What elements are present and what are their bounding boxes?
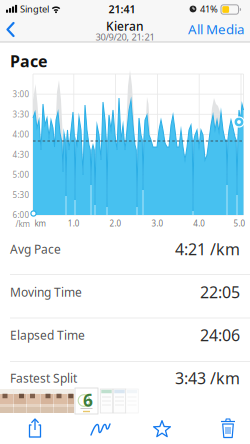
staticText: km	[34, 218, 45, 229]
staticText: /km	[15, 219, 29, 229]
staticText: 5:00	[12, 169, 29, 180]
staticText: 3:00	[12, 89, 29, 99]
staticText: 4:30	[12, 149, 29, 160]
staticText: 4:00	[12, 129, 29, 140]
staticText: 21:41	[108, 2, 135, 16]
staticText: Elapsed Time	[10, 327, 85, 343]
staticText: Moving Time	[10, 284, 82, 300]
staticText: 3.0	[151, 218, 163, 229]
staticText: 24:06	[200, 324, 240, 346]
staticText: 6:00	[12, 210, 29, 220]
staticText: Avg Pace	[10, 241, 61, 257]
staticText: All Media	[188, 20, 244, 38]
staticText: 5:30	[12, 190, 29, 200]
staticText: Fastest Split	[10, 370, 77, 386]
staticText: Pace	[10, 50, 48, 72]
staticText: 5.0	[233, 218, 245, 229]
staticText: 30/9/20, 21:21	[95, 31, 154, 43]
staticText: 4.0	[193, 218, 205, 229]
staticText: 1.0	[68, 218, 80, 229]
staticText: Kieran	[106, 18, 144, 34]
staticText: 3:43 /km	[175, 367, 240, 389]
staticText: 3:30	[12, 109, 29, 120]
staticText: 22:05	[200, 281, 240, 303]
staticText: 2.0	[110, 218, 122, 229]
staticText: Singtel	[20, 3, 49, 15]
staticText: 4:21 /km	[175, 238, 240, 260]
staticText: 6	[83, 388, 93, 411]
staticText: 41%	[200, 3, 218, 15]
